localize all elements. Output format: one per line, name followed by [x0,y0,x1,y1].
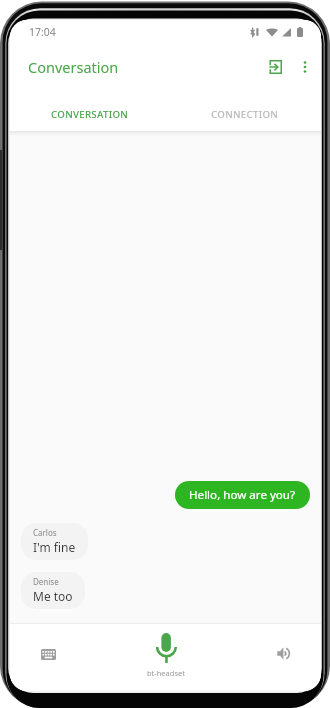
button[interactable]: Denise [21,572,85,609]
button[interactable]: Keyboard [30,636,67,673]
button[interactable]: Hello, how are you? [175,481,310,509]
staticText: bt-headset [147,668,185,678]
button[interactable]: More options [290,52,320,82]
button[interactable]: bt-headset [147,633,185,678]
staticText: Carlos [33,527,57,538]
button[interactable]: CONNECTION [165,94,321,131]
staticText: Conversation [28,57,119,77]
staticText: Denise [33,576,59,587]
button[interactable]: CONVERSATION [10,94,165,131]
staticText: I'm fine [33,539,76,555]
staticText: CONNECTION [211,108,279,121]
button[interactable]: Login [260,52,290,82]
button[interactable]: Carlos [21,523,88,560]
button[interactable]: Speaker [266,635,303,672]
staticText: Me too [33,588,73,604]
staticText: CONVERSATION [51,108,129,121]
staticText: Hello, how are you? [189,487,296,503]
staticText: 17:04 [29,25,56,39]
